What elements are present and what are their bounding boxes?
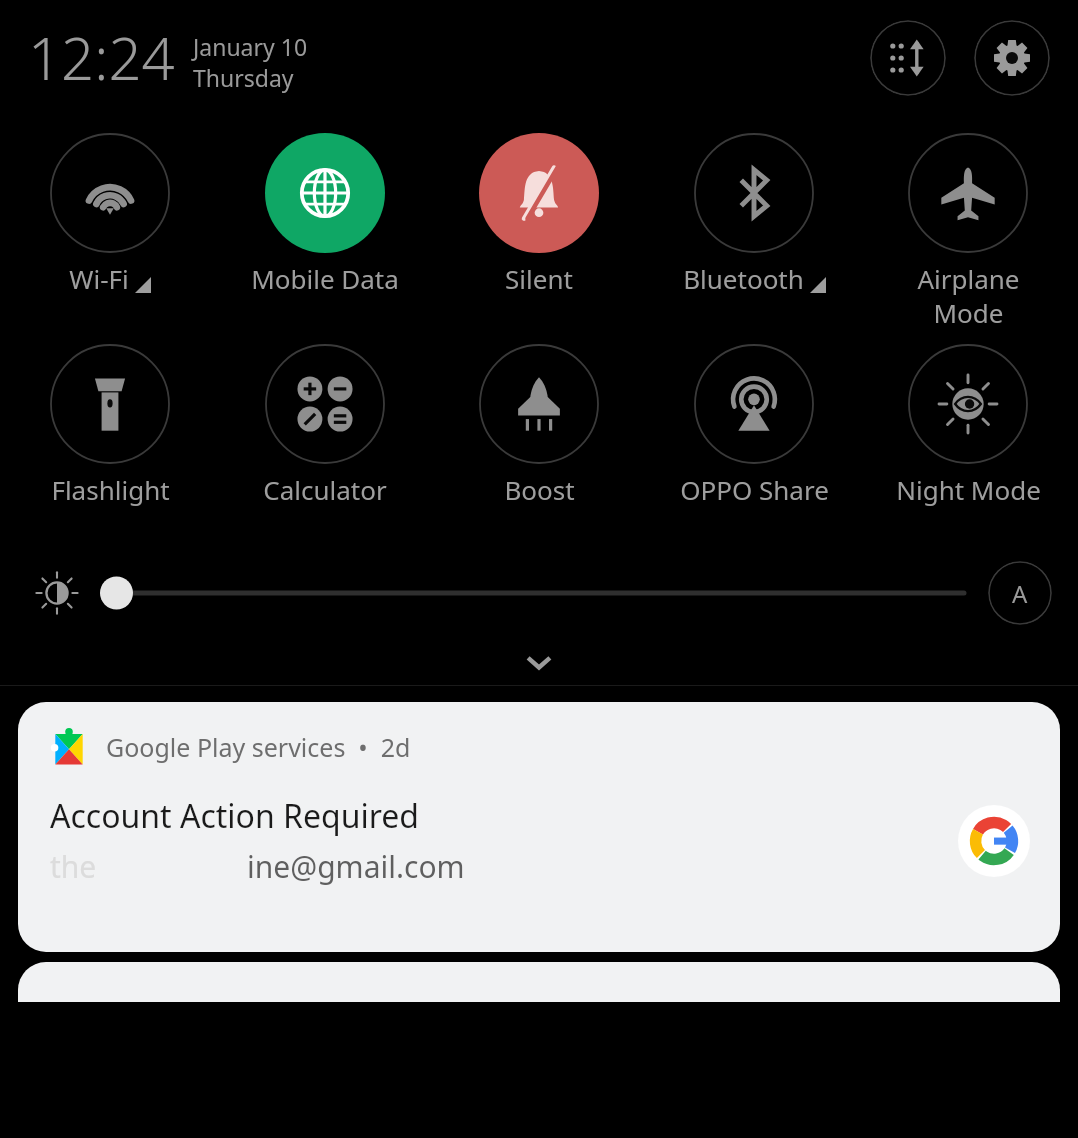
button[interactable]: Night Mode xyxy=(870,344,1066,507)
staticText: Bluetooth xyxy=(683,261,804,296)
button[interactable]: Expand xyxy=(0,639,1078,685)
staticText: ine@gmail.com xyxy=(247,846,465,887)
button[interactable]: Boost xyxy=(441,344,637,507)
button[interactable]: Brightness slider xyxy=(98,563,966,623)
staticText: Thursday xyxy=(193,62,294,93)
staticText: Mobile Data xyxy=(251,261,399,296)
button[interactable]: Silent xyxy=(441,133,637,296)
staticText: Airplane Mode xyxy=(917,261,1020,330)
staticText: Flashlight xyxy=(51,472,170,507)
staticText: Night Mode xyxy=(896,472,1041,507)
button[interactable]: OPPO Share xyxy=(656,344,852,507)
button[interactable]: Edit quick settings xyxy=(870,20,946,96)
button[interactable]: Bluetooth xyxy=(656,133,852,296)
button[interactable] xyxy=(18,962,1060,1002)
staticText: Boost xyxy=(504,472,575,507)
staticText: Wi-Fi xyxy=(69,261,129,296)
button[interactable]: Auto brightness xyxy=(988,561,1052,625)
staticText: Calculator xyxy=(263,472,387,507)
button[interactable]: Settings xyxy=(974,20,1050,96)
staticText: A xyxy=(1012,577,1028,610)
staticText: Google Play services • 2d xyxy=(106,730,411,764)
button[interactable]: Mobile Data xyxy=(227,133,423,296)
button[interactable]: Wi-Fi xyxy=(12,133,208,296)
staticText: 12:24 xyxy=(28,18,175,97)
other: Brightness xyxy=(26,562,88,624)
staticText: OPPO Share xyxy=(680,472,829,507)
button[interactable]: Google Play services • 2d xyxy=(18,702,1060,952)
button[interactable]: Calculator xyxy=(227,344,423,507)
staticText: Account Action Required xyxy=(50,794,419,838)
staticText: Silent xyxy=(505,261,573,296)
button[interactable]: Airplane Mode xyxy=(870,133,1066,330)
staticText: January 10 xyxy=(193,31,308,62)
staticText: the xyxy=(50,846,97,887)
button[interactable]: Flashlight xyxy=(12,344,208,507)
